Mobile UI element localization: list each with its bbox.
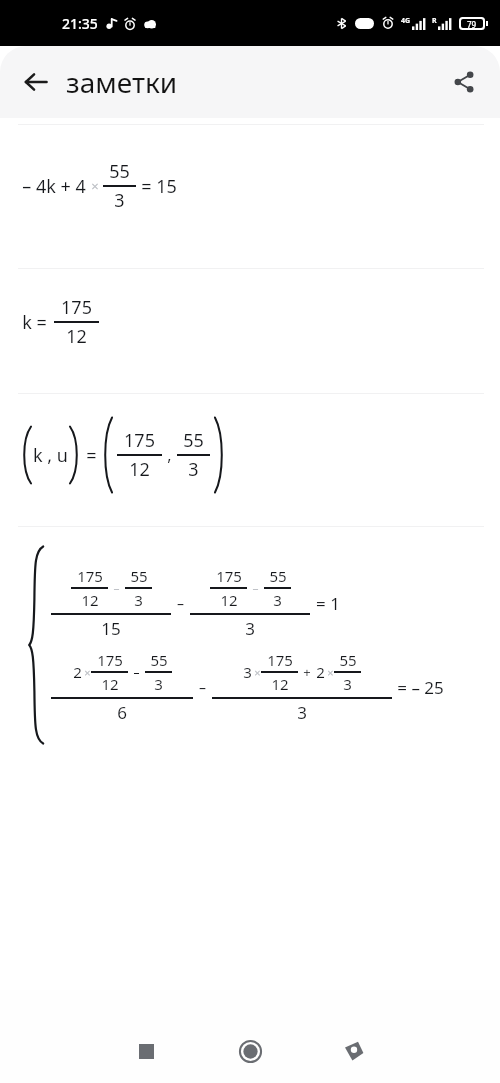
staticText: – <box>199 678 206 697</box>
staticText: × <box>254 665 261 680</box>
staticText: – <box>113 580 120 596</box>
staticText: 175 <box>77 566 103 586</box>
staticText: 21:35 <box>62 14 98 33</box>
button[interactable]: Recents <box>117 1022 175 1080</box>
staticText: = 1 <box>316 592 340 615</box>
staticText: 4G <box>401 16 411 26</box>
staticText: 3 <box>297 701 307 724</box>
staticText: 15 <box>101 617 121 640</box>
staticText: k = <box>22 310 47 335</box>
staticText: 175 <box>97 650 123 670</box>
staticText: 2 <box>316 662 325 682</box>
staticText: – <box>133 664 140 680</box>
staticText: 12 <box>129 457 150 482</box>
staticText: = <box>86 443 97 468</box>
staticText: R <box>432 16 437 26</box>
staticText: – 4k + 4 <box>22 174 86 199</box>
staticText: 175 <box>216 566 242 586</box>
staticText: заметки <box>66 63 178 101</box>
staticText: 175 <box>267 650 293 670</box>
button[interactable]: Back <box>14 60 58 104</box>
staticText: 12 <box>81 590 99 610</box>
staticText: = – 25 <box>397 676 444 699</box>
staticText: 3 <box>245 617 255 640</box>
staticText: – <box>177 594 184 613</box>
staticText: 3 <box>114 188 125 213</box>
staticText: 55 <box>130 566 148 586</box>
staticText: + <box>303 663 311 681</box>
button[interactable]: Share <box>442 60 486 104</box>
staticText: × <box>84 665 91 680</box>
staticText: 55 <box>339 650 357 670</box>
staticText: 79 <box>467 19 477 28</box>
button[interactable]: Back <box>325 1022 383 1080</box>
staticText: 3 <box>154 674 163 694</box>
staticText: 12 <box>220 590 238 610</box>
staticText: 55 <box>150 650 168 670</box>
staticText: 3 <box>243 662 252 682</box>
staticText: 6 <box>117 701 127 724</box>
staticText: 12 <box>271 674 289 694</box>
staticText: 12 <box>101 674 119 694</box>
staticText: × <box>91 177 99 195</box>
staticText: , <box>167 444 172 466</box>
staticText: – <box>252 580 259 596</box>
staticText: 3 <box>134 590 143 610</box>
staticText: 175 <box>124 428 155 453</box>
staticText: 55 <box>269 566 287 586</box>
staticText: 175 <box>61 295 92 320</box>
staticText: = 15 <box>141 174 177 199</box>
staticText: 55 <box>109 159 130 184</box>
staticText: k , u <box>33 443 68 468</box>
staticText: 55 <box>183 428 204 453</box>
staticText: × <box>327 665 334 680</box>
staticText: 3 <box>188 457 199 482</box>
staticText: 2 <box>73 662 82 682</box>
staticText: 3 <box>343 674 352 694</box>
button[interactable]: Home <box>221 1022 279 1080</box>
staticText: 3 <box>273 590 282 610</box>
staticText: 12 <box>66 324 87 349</box>
